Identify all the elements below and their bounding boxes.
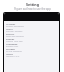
staticText: Sounds, badges <box>6 30 23 32</box>
staticText: Figure out how to use the app <box>14 7 51 11</box>
staticText: English (US) <box>6 45 19 47</box>
staticText: Language <box>6 42 18 45</box>
staticText: 32 GB available <box>6 50 22 52</box>
staticText: Setting <box>26 2 39 7</box>
staticText: Privacy <box>6 32 15 35</box>
staticText: Version 1.0.3 <box>6 55 20 57</box>
staticText: Profile, password <box>6 25 24 27</box>
button[interactable]: Account <box>4 22 59 27</box>
staticText: Alerts <box>6 27 13 30</box>
button[interactable]: Language <box>4 42 59 47</box>
button[interactable]: Display <box>4 37 59 42</box>
staticText: About <box>6 52 13 55</box>
staticText: Display <box>6 37 15 40</box>
button[interactable]: Alerts <box>4 27 59 32</box>
button[interactable]: Storage <box>4 47 59 52</box>
staticText: Theme, text size <box>6 40 23 42</box>
button[interactable]: Privacy <box>4 32 59 37</box>
staticText: Storage <box>6 47 15 50</box>
staticText: Data and security <box>6 35 24 37</box>
button[interactable]: About <box>4 52 59 57</box>
staticText: Account <box>6 22 16 25</box>
